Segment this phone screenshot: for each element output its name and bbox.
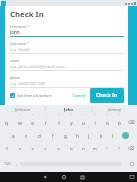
staticText: 9 xyxy=(106,113,108,116)
button[interactable]: Johnny xyxy=(92,105,137,113)
staticText: x xyxy=(31,146,34,152)
button[interactable]: d xyxy=(33,129,46,142)
button[interactable]: ! xyxy=(101,142,113,155)
button[interactable]: w xyxy=(13,116,26,129)
button[interactable]: Cancel xyxy=(71,91,88,100)
staticText: d xyxy=(38,133,41,139)
button[interactable]: r xyxy=(39,116,52,129)
staticText: Last name * xyxy=(10,41,29,45)
staticText: a xyxy=(12,133,15,139)
staticText: 8 xyxy=(94,113,96,116)
staticText: b xyxy=(70,146,73,152)
button[interactable]: v xyxy=(52,142,65,155)
staticText: q xyxy=(5,120,8,126)
button[interactable]: Hide keyboard xyxy=(127,172,137,182)
button[interactable]: q xyxy=(0,116,13,129)
staticText: ? xyxy=(118,146,120,152)
staticText: c xyxy=(44,146,47,152)
staticText: e.g. 0400 000 000 xyxy=(10,80,46,86)
staticText: . xyxy=(124,161,126,166)
staticText: Johnson xyxy=(15,107,31,112)
button[interactable]: b xyxy=(65,142,77,155)
staticText: Johnny xyxy=(108,107,121,112)
button[interactable]: o xyxy=(101,116,113,129)
staticText: 4 xyxy=(45,113,47,116)
button[interactable]: Back xyxy=(35,172,54,182)
button[interactable]: x xyxy=(26,142,39,155)
button[interactable]: ⌫ xyxy=(125,142,137,155)
button[interactable]: ? xyxy=(113,142,125,155)
staticText: z xyxy=(19,146,21,152)
button[interactable]: Recents xyxy=(73,172,92,182)
staticText: f xyxy=(52,133,54,139)
button[interactable]: h xyxy=(71,129,83,142)
button[interactable]: ⌫ xyxy=(125,116,137,129)
button[interactable]: Home xyxy=(54,172,73,182)
staticText: t xyxy=(58,120,60,126)
button[interactable]: i xyxy=(89,116,101,129)
staticText: u xyxy=(82,120,85,126)
staticText: p xyxy=(118,120,121,126)
staticText: e xyxy=(31,120,34,126)
button[interactable]: Emoji xyxy=(128,155,136,172)
button[interactable]: First name * xyxy=(10,24,124,37)
button[interactable]: y xyxy=(65,116,77,129)
staticText: phone xyxy=(10,75,20,79)
staticText: John xyxy=(10,29,20,35)
staticText: ⌫ xyxy=(128,120,135,125)
button[interactable]: email xyxy=(10,58,124,71)
button[interactable]: Check In xyxy=(90,88,124,103)
staticText: 2 xyxy=(19,113,21,116)
staticText: k xyxy=(100,133,103,139)
button[interactable]: l xyxy=(107,129,119,142)
staticText: ⇧ xyxy=(5,146,9,151)
button[interactable]: Send me a brochure xyxy=(10,93,52,98)
button[interactable]: Last name * xyxy=(10,41,124,54)
staticText: , xyxy=(16,161,18,166)
staticText: y xyxy=(70,120,73,126)
staticText: l xyxy=(112,133,114,139)
button[interactable]: g xyxy=(59,129,71,142)
staticText: 3 xyxy=(32,113,34,116)
staticText: 7 xyxy=(82,113,84,116)
staticText: Check In xyxy=(96,92,118,99)
staticText: r xyxy=(45,120,47,126)
staticText: j xyxy=(88,133,90,139)
button[interactable]: j xyxy=(83,129,95,142)
staticText: n xyxy=(82,146,85,152)
staticText: h xyxy=(76,133,79,139)
button[interactable]: e xyxy=(26,116,39,129)
button[interactable]: Enter xyxy=(119,129,131,142)
button[interactable]: Johnson xyxy=(0,105,45,113)
button[interactable]: z xyxy=(13,142,26,155)
staticText: e.g. Smith xyxy=(10,46,31,52)
button[interactable]: c xyxy=(39,142,52,155)
button[interactable]: f xyxy=(46,129,59,142)
button[interactable]: John xyxy=(46,105,91,113)
staticText: First name * xyxy=(10,24,30,28)
button[interactable]: phone xyxy=(10,75,124,88)
button[interactable]: a xyxy=(7,129,20,142)
staticText: o xyxy=(106,120,109,126)
staticText: s xyxy=(25,133,28,139)
staticText: ! xyxy=(106,146,108,152)
staticText: i xyxy=(94,120,96,126)
button[interactable]: ?123 xyxy=(1,155,14,172)
button[interactable]: s xyxy=(20,129,33,142)
button[interactable]: , xyxy=(14,155,20,172)
button[interactable]: k xyxy=(95,129,107,142)
button[interactable]: p xyxy=(113,116,125,129)
button[interactable]: m xyxy=(89,142,101,155)
staticText: 0 xyxy=(118,113,120,116)
button[interactable]: u xyxy=(77,116,89,129)
button[interactable]: t xyxy=(52,116,65,129)
staticText: ?123 xyxy=(4,162,11,166)
button[interactable]: n xyxy=(77,142,89,155)
button[interactable]: ⇧ xyxy=(0,142,13,155)
staticText: ⌫ xyxy=(128,146,134,151)
staticText: g xyxy=(64,133,67,139)
staticText: e.g. john.smith@email.com xyxy=(10,63,65,69)
staticText: email xyxy=(10,58,19,62)
